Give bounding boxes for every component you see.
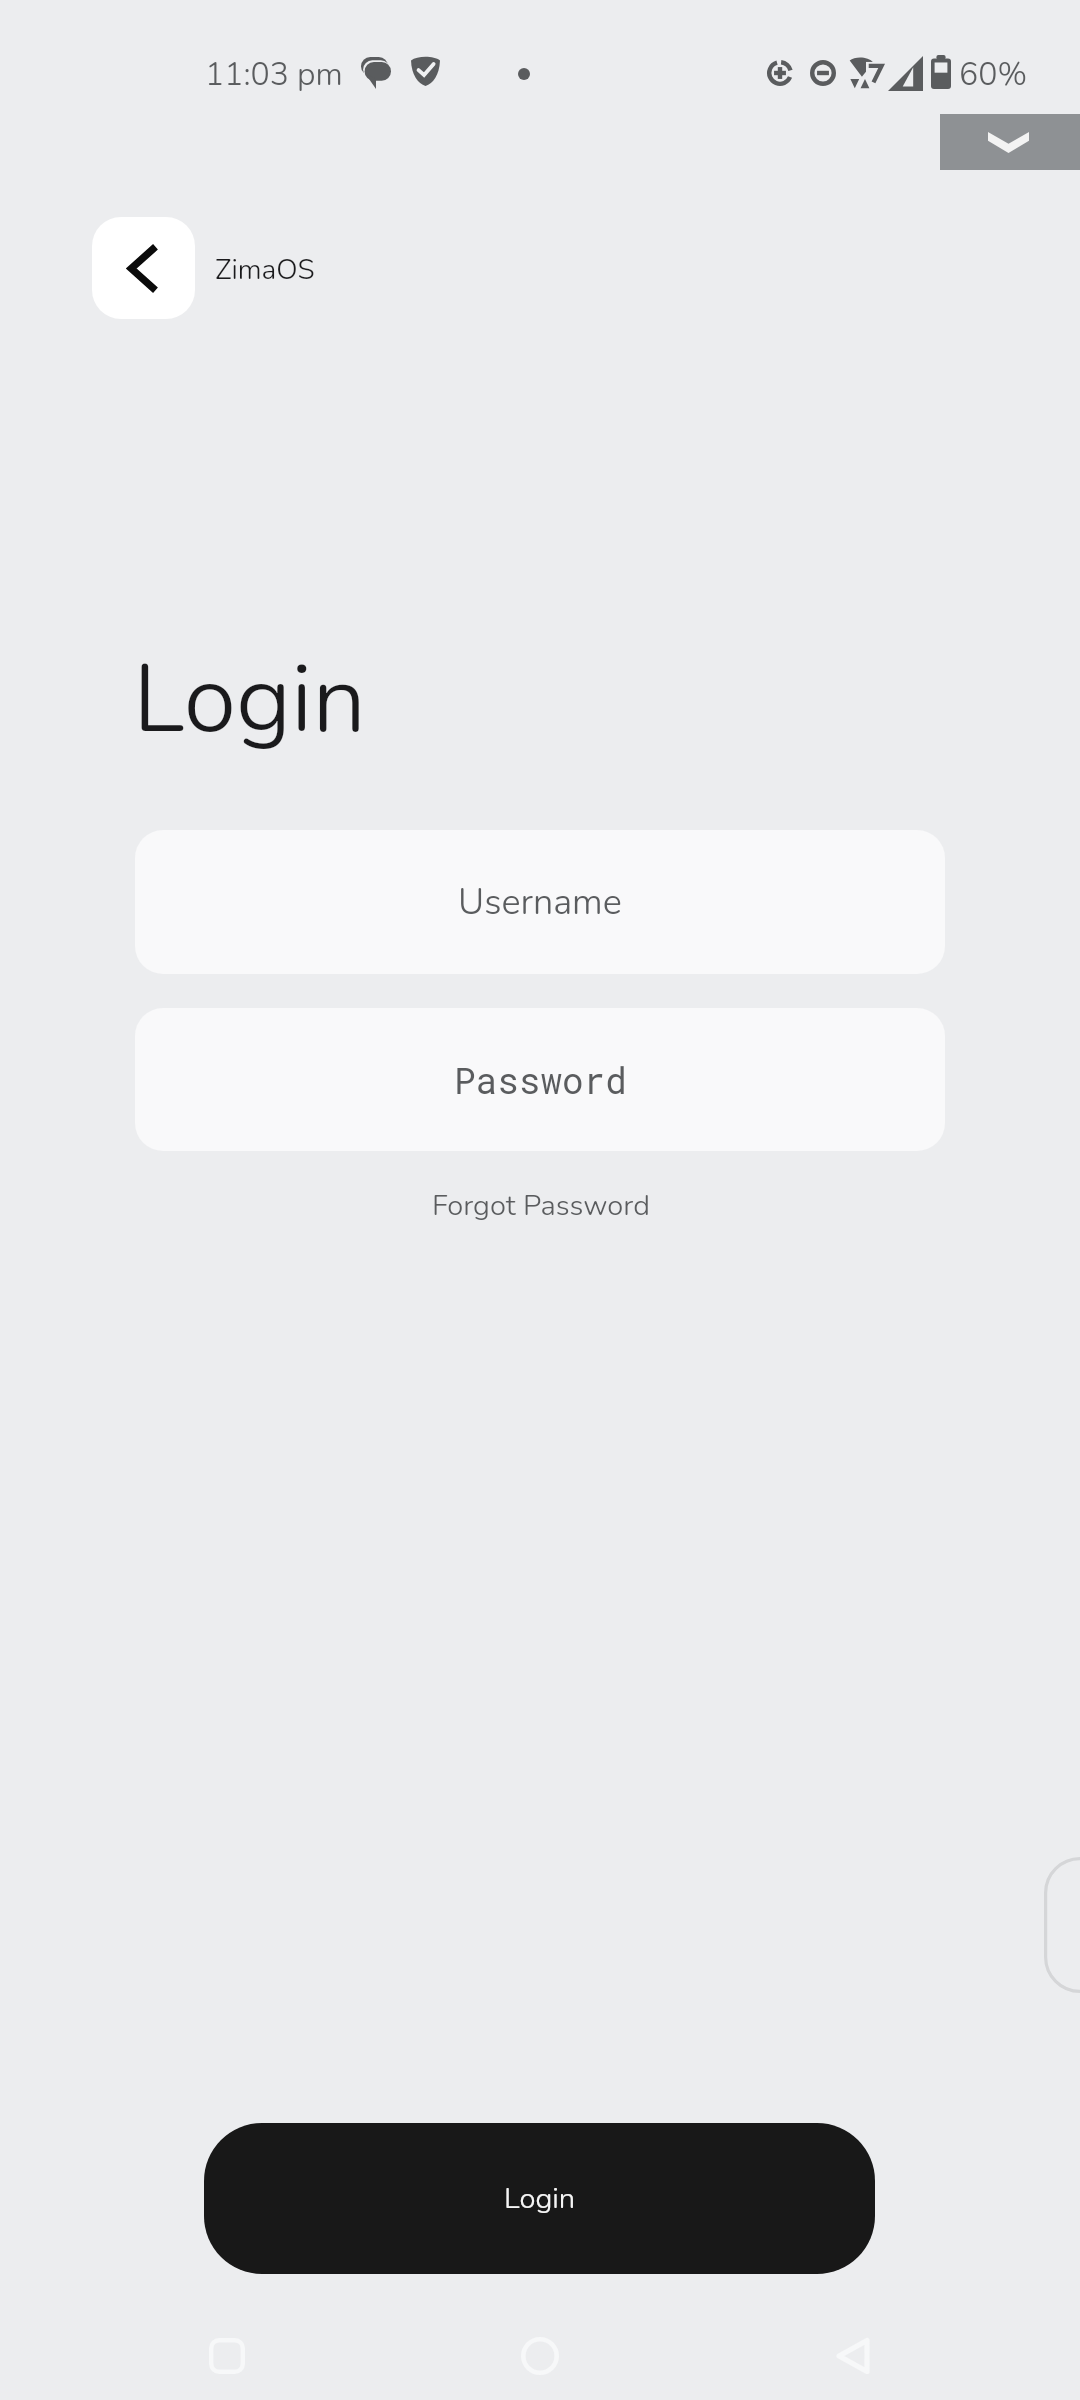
button[interactable]: Password	[135, 1008, 945, 1151]
staticText: Forgot Password	[432, 1186, 650, 1226]
button[interactable]: Back	[92, 217, 195, 319]
button[interactable]: Login	[204, 2123, 875, 2274]
staticText: Username	[458, 878, 622, 927]
staticText: Login	[504, 2179, 576, 2219]
staticText: ZimaOS	[215, 251, 315, 289]
button[interactable]: Forgot Password	[430, 1182, 652, 1230]
staticText: Password	[454, 1056, 627, 1103]
staticText: 60%	[959, 53, 1028, 97]
staticText: Login	[133, 635, 367, 765]
staticText: 11:03 pm	[205, 53, 343, 97]
button[interactable]: Expand notifications	[940, 114, 1080, 170]
button[interactable]: Username	[135, 830, 945, 974]
